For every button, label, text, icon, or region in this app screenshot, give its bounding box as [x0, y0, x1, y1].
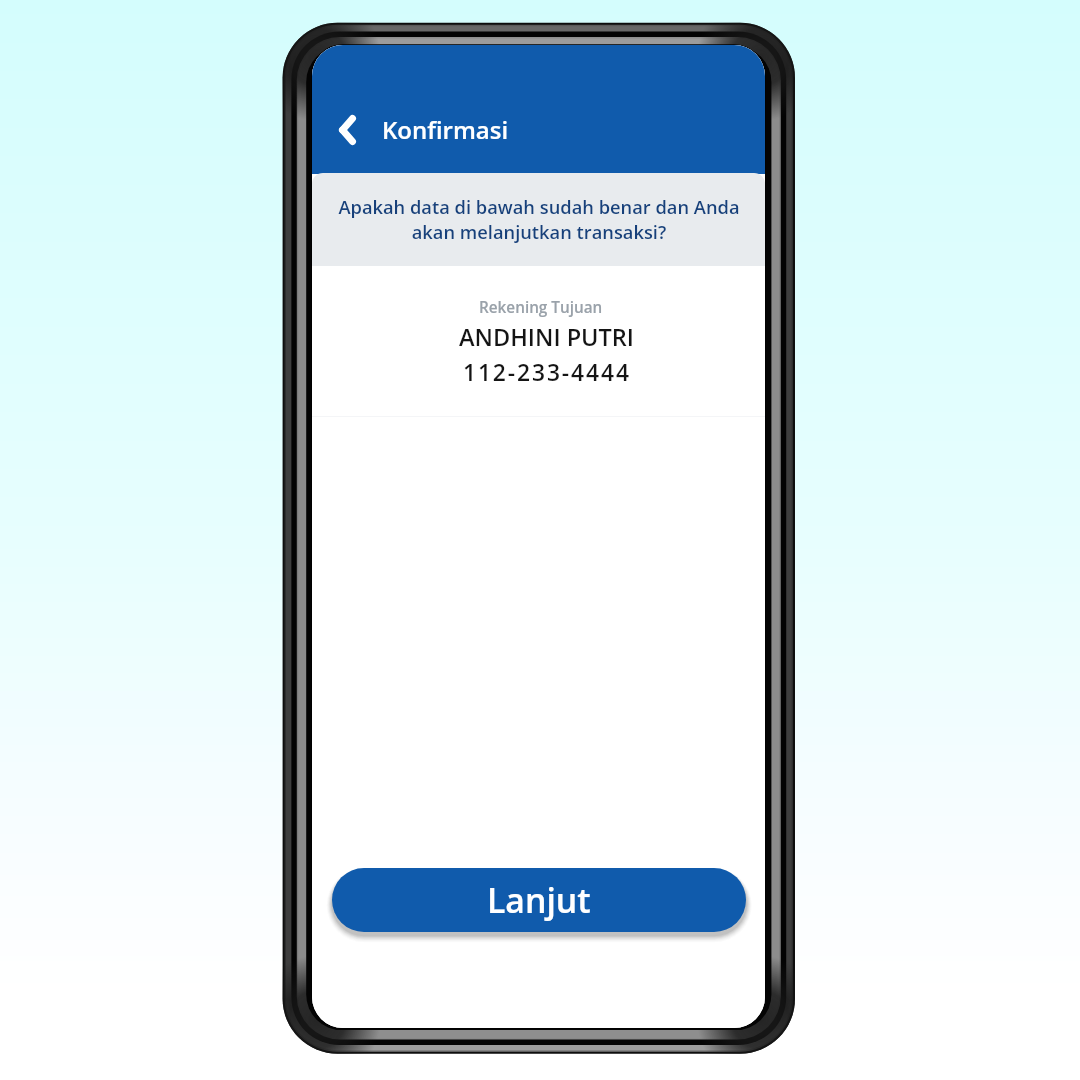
staticText: Apakah data di bawah sudah benar dan And… [338, 194, 740, 244]
button[interactable]: Back [325, 107, 370, 152]
staticText: ANDHINI PUTRI [459, 321, 635, 353]
staticText: Konfirmasi [382, 113, 509, 146]
staticText: Lanjut [487, 877, 591, 923]
button[interactable]: Lanjut [332, 868, 746, 932]
staticText: 112-233-4444 [463, 357, 631, 388]
staticText: Rekening Tujuan [479, 297, 603, 318]
